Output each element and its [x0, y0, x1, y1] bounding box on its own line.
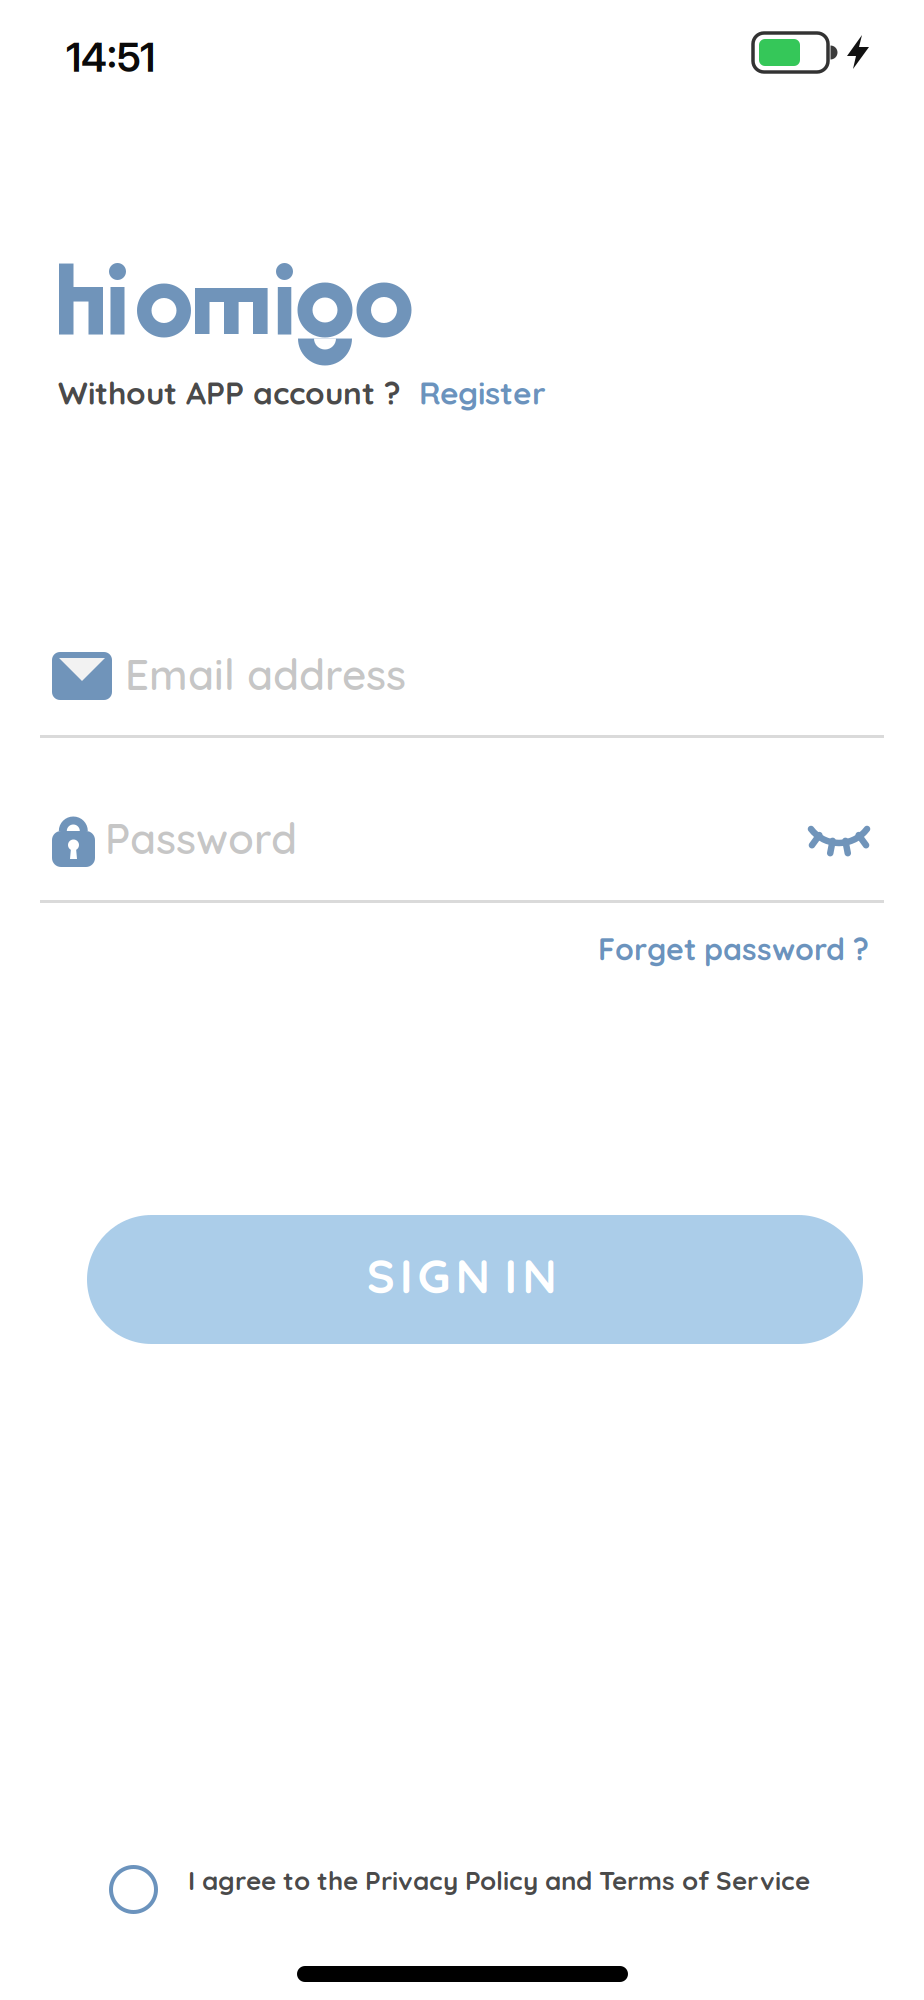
staticText: Forget password ?	[598, 930, 869, 968]
staticText: Email address	[125, 648, 406, 700]
staticText: S I G N I N	[367, 1246, 557, 1305]
staticText: I agree to the Privacy Policy and Terms …	[188, 1864, 810, 1896]
staticText: 14:51	[66, 33, 155, 81]
staticText: Register	[419, 373, 546, 412]
staticText: Password	[105, 812, 297, 864]
staticText: Without APP account ?	[58, 373, 401, 412]
